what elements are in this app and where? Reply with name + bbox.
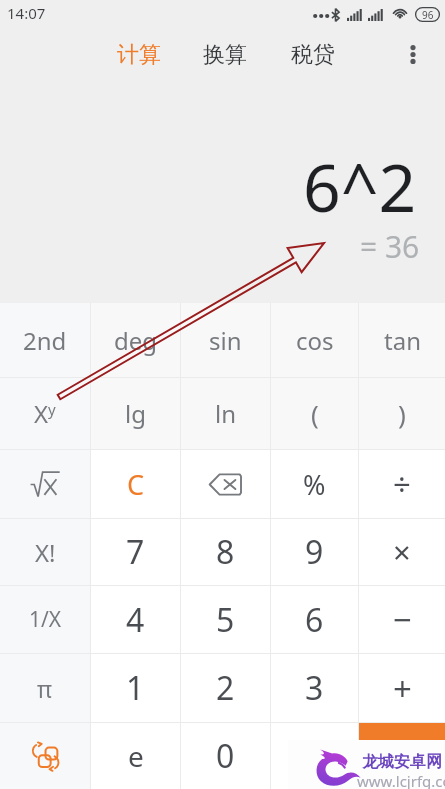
- button[interactable]: 换算: [194, 37, 256, 73]
- staticText: +: [393, 666, 412, 711]
- staticText: −: [393, 597, 412, 642]
- button[interactable]: C: [91, 450, 180, 518]
- button[interactable]: e: [91, 723, 180, 789]
- button[interactable]: 5: [181, 586, 270, 653]
- staticText: deg: [114, 324, 158, 357]
- staticText: (: [311, 396, 319, 431]
- button[interactable]: π: [0, 654, 90, 722]
- staticText: 9: [305, 530, 324, 574]
- staticText: %: [303, 466, 326, 503]
- staticText: 5: [216, 598, 235, 642]
- button[interactable]: ÷: [359, 450, 445, 518]
- staticText: C: [127, 466, 145, 503]
- button[interactable]: 7: [91, 519, 180, 585]
- button[interactable]: Backspace: [181, 450, 270, 518]
- staticText: π: [37, 673, 53, 704]
- staticText: 税贷: [291, 41, 335, 69]
- staticText: 龙城安卓网: [362, 752, 442, 772]
- staticText: 6^2: [303, 141, 417, 231]
- button[interactable]: ): [359, 378, 445, 449]
- staticText: = 36: [360, 226, 420, 267]
- button[interactable]: More options: [394, 35, 432, 73]
- staticText: cos: [296, 324, 334, 357]
- button[interactable]: tan: [359, 303, 445, 377]
- button[interactable]: %: [271, 450, 358, 518]
- staticText: sin: [209, 324, 242, 357]
- staticText: =: [392, 733, 412, 779]
- other: Unit converter: [0, 723, 90, 789]
- staticText: 4: [126, 598, 145, 642]
- staticText: .: [310, 734, 319, 778]
- staticText: 计算: [117, 41, 161, 69]
- button[interactable]: 1: [91, 654, 180, 722]
- staticText: X!: [35, 536, 56, 569]
- staticText: 14:07: [7, 3, 46, 23]
- staticText: 1: [126, 666, 145, 710]
- staticText: 1/X: [29, 605, 62, 634]
- button[interactable]: Unit converter: [0, 723, 90, 789]
- staticText: 8: [216, 530, 235, 574]
- staticText: 7: [126, 530, 145, 574]
- staticText: 换算: [203, 41, 247, 69]
- staticText: tan: [384, 324, 421, 357]
- button[interactable]: 税贷: [282, 37, 344, 73]
- button[interactable]: lg: [91, 378, 180, 449]
- button[interactable]: 0: [181, 723, 270, 789]
- button[interactable]: Xy: [0, 378, 90, 449]
- button[interactable]: 计算: [108, 37, 170, 73]
- staticText: lg: [125, 397, 146, 430]
- button[interactable]: .: [271, 723, 358, 789]
- button[interactable]: +: [359, 654, 445, 722]
- button[interactable]: ln: [181, 378, 270, 449]
- staticText: ln: [215, 397, 237, 430]
- button[interactable]: cos: [271, 303, 358, 377]
- staticText: Xy: [34, 397, 56, 430]
- button[interactable]: −: [359, 586, 445, 653]
- staticText: e: [128, 737, 144, 775]
- button[interactable]: deg: [91, 303, 180, 377]
- button[interactable]: sin: [181, 303, 270, 377]
- button[interactable]: 9: [271, 519, 358, 585]
- button[interactable]: 2nd: [0, 303, 90, 377]
- button[interactable]: 1/X: [0, 586, 90, 653]
- button[interactable]: 3: [271, 654, 358, 722]
- button[interactable]: (: [271, 378, 358, 449]
- staticText: 2nd: [23, 324, 67, 357]
- button[interactable]: 6: [271, 586, 358, 653]
- staticText: ÷: [393, 463, 411, 505]
- staticText: ×: [393, 531, 411, 573]
- button[interactable]: 2: [181, 654, 270, 722]
- staticText: www.lcjrfg.com: [357, 771, 445, 789]
- staticText: 3: [305, 666, 324, 710]
- staticText: 0: [216, 734, 235, 778]
- button[interactable]: =: [359, 723, 445, 789]
- other: Backspace: [181, 450, 270, 518]
- staticText: 2: [216, 666, 235, 710]
- staticText: 96: [422, 8, 434, 22]
- button[interactable]: 4: [91, 586, 180, 653]
- button[interactable]: X!: [0, 519, 90, 585]
- button[interactable]: 8: [181, 519, 270, 585]
- staticText: ): [398, 396, 406, 431]
- button[interactable]: ×: [359, 519, 445, 585]
- button[interactable]: [0, 450, 90, 518]
- staticText: 6: [305, 598, 324, 642]
